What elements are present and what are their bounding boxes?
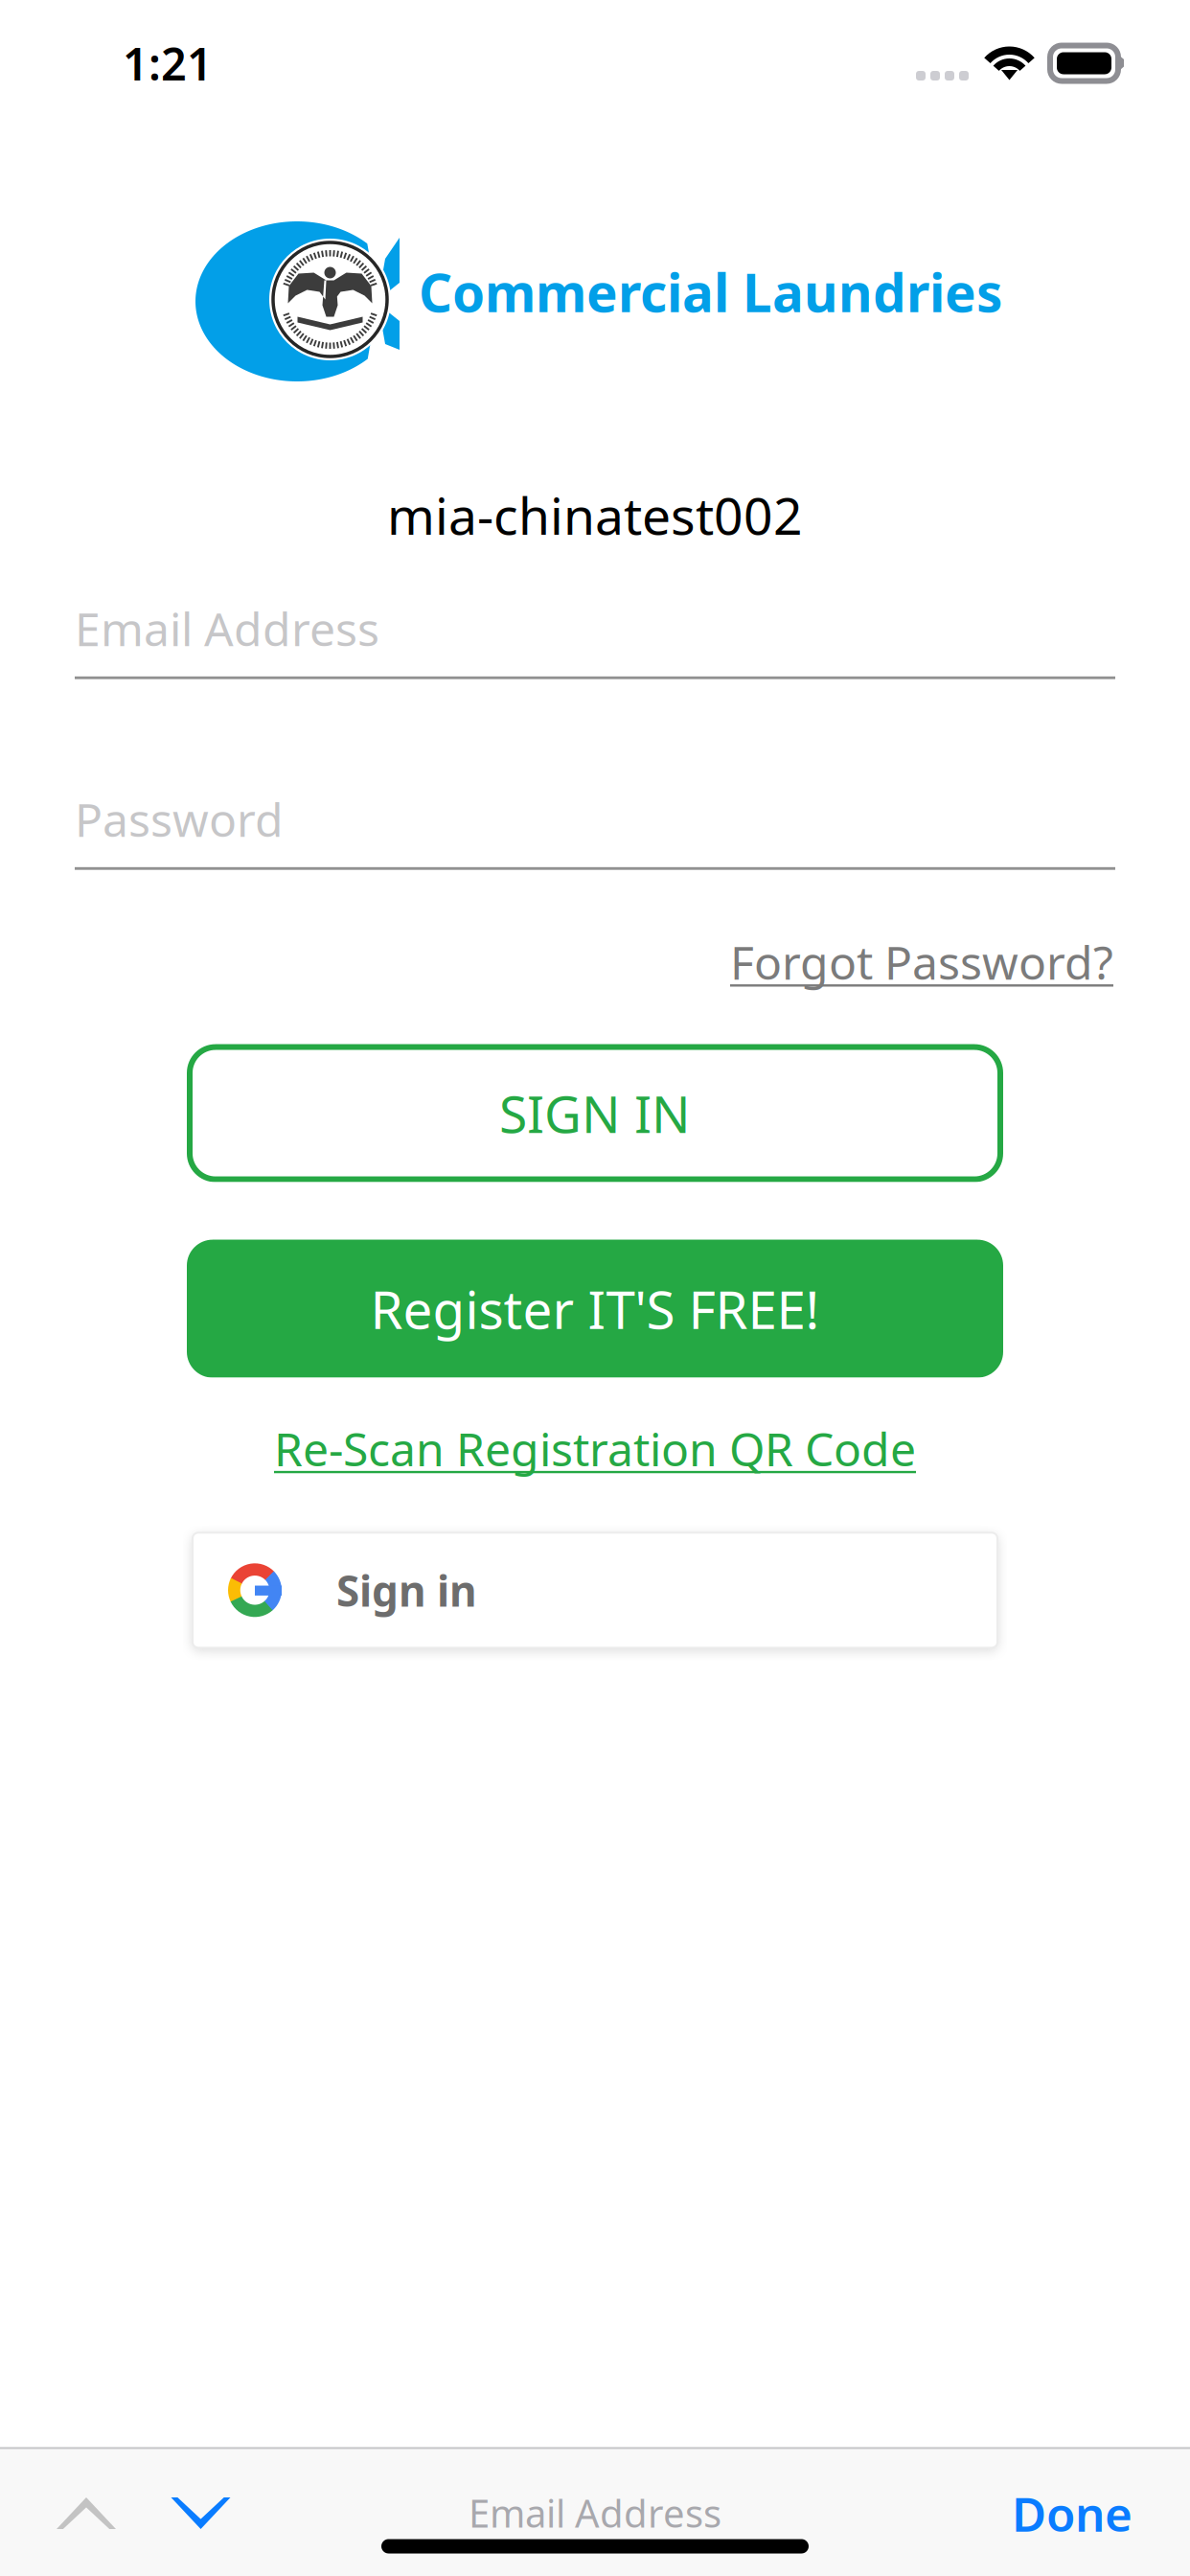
staticText: mia-chinatest002 (387, 481, 803, 549)
staticText: Email Address (75, 598, 379, 659)
staticText: Done (1012, 2482, 1133, 2545)
staticText: 1:21 (123, 34, 213, 93)
button[interactable]: Done (973, 2456, 1133, 2571)
button[interactable]: Email Address (75, 598, 1115, 679)
button[interactable]: Re-Scan Registration QR Code (274, 1418, 916, 1479)
staticText: SIGN IN (499, 1079, 691, 1147)
button[interactable]: SIGN IN (187, 1044, 1003, 1182)
staticText: Re-Scan Registration QR Code (274, 1418, 916, 1479)
staticText: Forgot Password? (730, 931, 1113, 992)
staticText: Password (75, 789, 284, 850)
button[interactable]: Previous field (27, 2456, 146, 2571)
button[interactable]: Password (75, 789, 1115, 870)
staticText: Commercial Laundries (419, 257, 1002, 327)
staticText: Register IT'S FREE! (370, 1274, 820, 1343)
button[interactable]: Forgot Password? (730, 931, 1113, 992)
button[interactable]: Register IT'S FREE! (187, 1240, 1003, 1378)
button[interactable]: Sign in (193, 1533, 997, 1648)
staticText: Email Address (469, 2487, 721, 2538)
staticText: Sign in (336, 1562, 477, 1618)
button[interactable]: Next field (146, 2456, 256, 2571)
